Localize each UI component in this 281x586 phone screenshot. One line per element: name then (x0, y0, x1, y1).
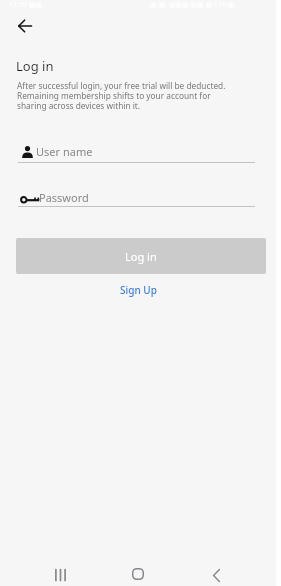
button[interactable] (202, 561, 230, 586)
staticText: After successful login, your free trial … (17, 80, 226, 111)
staticText: Log in (16, 57, 54, 75)
button[interactable] (124, 560, 152, 586)
button[interactable] (46, 561, 74, 586)
staticText: Password (39, 190, 89, 205)
button[interactable]: Sign Up (120, 283, 157, 297)
staticText: Log in (125, 249, 157, 264)
staticText: User name (36, 144, 93, 159)
button[interactable]: User name (16, 140, 256, 166)
button[interactable] (11, 12, 39, 40)
staticText: Sign Up (120, 283, 157, 297)
button[interactable]: Log in (16, 238, 266, 274)
button[interactable]: Password (16, 185, 256, 211)
